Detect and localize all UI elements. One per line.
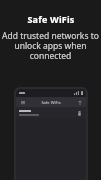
staticText: Safe WiFis — [41, 100, 61, 105]
button[interactable]: Delete network — [75, 109, 83, 117]
button[interactable]: Add network — [76, 99, 83, 106]
button[interactable]: Delete network — [16, 107, 86, 118]
staticText: Add trusted networks to unlock apps when… — [2, 30, 99, 61]
staticText: Safe WiFis — [27, 13, 75, 25]
button[interactable]: Open navigation menu — [19, 99, 26, 106]
